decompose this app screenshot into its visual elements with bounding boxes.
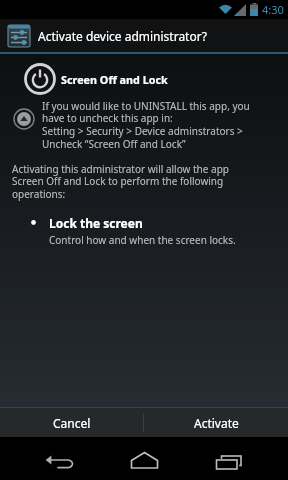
button[interactable] — [214, 449, 244, 473]
button[interactable]: Activate — [144, 408, 288, 437]
staticText: Activate — [194, 415, 239, 431]
staticText: Screen Off and Lock — [61, 72, 168, 87]
button[interactable] — [44, 449, 74, 473]
button[interactable] — [129, 449, 160, 473]
staticText: Cancel — [53, 415, 91, 431]
staticText: Activating this administrator will allow… — [12, 162, 229, 201]
staticText: Lock the screen — [49, 215, 143, 231]
staticText: Activate device administrator? — [38, 28, 207, 44]
button[interactable] — [13, 108, 35, 130]
button[interactable]: Cancel — [0, 408, 143, 437]
staticText: If you would like to UNINSTALL this app,… — [42, 99, 250, 151]
staticText: 4:30 — [262, 2, 284, 17]
staticText: Control how and when the screen locks. — [49, 233, 236, 247]
